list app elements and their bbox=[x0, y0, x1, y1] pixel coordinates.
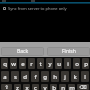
button[interactable]: y bbox=[46, 58, 53, 69]
staticText: r bbox=[30, 60, 33, 68]
button[interactable]: Checkbox bbox=[3, 7, 6, 10]
staticText: o bbox=[75, 60, 79, 68]
button[interactable]: i bbox=[64, 58, 71, 69]
staticText: b bbox=[52, 84, 56, 90]
button[interactable]: m bbox=[68, 84, 75, 90]
button[interactable]: ⇧ bbox=[1, 84, 12, 90]
button[interactable]: p bbox=[82, 58, 89, 69]
button[interactable]: s bbox=[11, 71, 19, 82]
button[interactable]: v bbox=[41, 84, 48, 90]
button[interactable]: a bbox=[1, 71, 9, 82]
staticText: v bbox=[43, 84, 47, 90]
button[interactable]: g bbox=[41, 71, 49, 82]
button[interactable]: h bbox=[51, 71, 59, 82]
button[interactable]: z bbox=[14, 84, 21, 90]
staticText: y bbox=[48, 60, 52, 68]
staticText: Sync from server to phone only bbox=[8, 6, 67, 11]
staticText: q bbox=[3, 60, 7, 68]
staticText: g bbox=[43, 73, 47, 81]
staticText: u bbox=[57, 60, 61, 68]
staticText: m bbox=[69, 84, 75, 90]
button[interactable]: q bbox=[1, 58, 8, 69]
staticText: s bbox=[14, 73, 17, 81]
button[interactable]: w bbox=[10, 58, 17, 69]
button[interactable]: d bbox=[21, 71, 29, 82]
staticText: w bbox=[11, 60, 16, 68]
staticText: p bbox=[84, 60, 88, 68]
staticText: j bbox=[64, 73, 66, 81]
staticText: a bbox=[3, 73, 7, 81]
staticText: x bbox=[25, 84, 29, 90]
button[interactable]: ⌫ bbox=[77, 84, 89, 90]
staticText: Back bbox=[17, 48, 29, 55]
staticText: l bbox=[84, 73, 86, 81]
button[interactable]: t bbox=[37, 58, 44, 69]
staticText: d bbox=[23, 73, 27, 81]
staticText: n bbox=[61, 84, 65, 90]
button[interactable]: n bbox=[59, 84, 66, 90]
button[interactable]: Finish bbox=[47, 47, 90, 56]
staticText: e bbox=[21, 60, 25, 68]
button[interactable]: j bbox=[61, 71, 69, 82]
staticText: ⌫ bbox=[79, 84, 87, 90]
staticText: f bbox=[34, 73, 37, 81]
button[interactable]: Back bbox=[1, 47, 44, 56]
staticText: i bbox=[67, 60, 69, 68]
button[interactable]: x bbox=[23, 84, 30, 90]
staticText: k bbox=[73, 73, 77, 81]
button[interactable]: e bbox=[19, 58, 26, 69]
button[interactable]: l bbox=[81, 71, 89, 82]
staticText: t bbox=[39, 60, 42, 68]
button[interactable]: b bbox=[50, 84, 57, 90]
button[interactable]: c bbox=[32, 84, 39, 90]
button[interactable]: u bbox=[55, 58, 62, 69]
button[interactable]: f bbox=[31, 71, 39, 82]
staticText: h bbox=[53, 73, 57, 81]
staticText: c bbox=[34, 84, 37, 90]
staticText: ⇧ bbox=[4, 84, 9, 90]
staticText: Finish bbox=[62, 48, 76, 55]
button[interactable]: r bbox=[28, 58, 35, 69]
staticText: z bbox=[16, 84, 19, 90]
button[interactable]: o bbox=[73, 58, 80, 69]
button[interactable]: k bbox=[71, 71, 79, 82]
